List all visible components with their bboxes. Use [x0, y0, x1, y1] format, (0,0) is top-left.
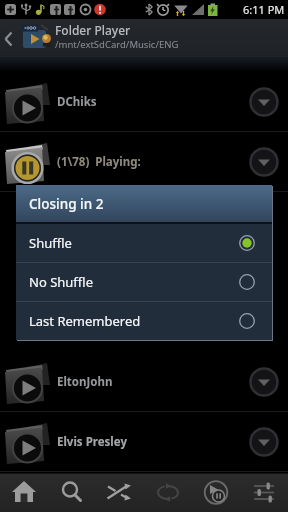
button[interactable]: [249, 147, 279, 177]
staticText: /mnt/extSdCard/Music/ENG: [55, 38, 179, 51]
button[interactable]: [0, 27, 20, 51]
staticText: Folder Player: [55, 22, 131, 38]
button[interactable]: Elvis Presley: [0, 412, 288, 472]
button[interactable]: EltonJohn: [0, 352, 288, 412]
staticText: 6:11 PM: [243, 2, 285, 17]
button[interactable]: [249, 427, 279, 457]
button[interactable]: [240, 473, 288, 512]
button[interactable]: [249, 367, 279, 397]
button[interactable]: [48, 473, 96, 512]
button[interactable]: [0, 473, 48, 512]
staticText: No Shuffle: [29, 273, 93, 291]
staticText: EltonJohn: [57, 374, 113, 390]
button[interactable]: [249, 87, 279, 117]
button[interactable]: DChiks: [0, 72, 288, 132]
staticText: Shuffle: [29, 234, 72, 252]
staticText: Last Remembered: [29, 312, 141, 330]
button[interactable]: [144, 473, 192, 512]
staticText: DChiks: [57, 94, 97, 110]
button[interactable]: Last Remembered: [16, 302, 272, 340]
button[interactable]: Shuffle: [16, 224, 272, 262]
button[interactable]: [192, 473, 240, 512]
button[interactable]: No Shuffle: [16, 263, 272, 301]
staticText: (1\78) Playing:: [57, 154, 141, 170]
button[interactable]: (1\78) Playing:: [0, 132, 288, 192]
staticText: Closing in 2: [29, 195, 104, 213]
button[interactable]: [96, 473, 144, 512]
staticText: Elvis Presley: [57, 434, 127, 450]
